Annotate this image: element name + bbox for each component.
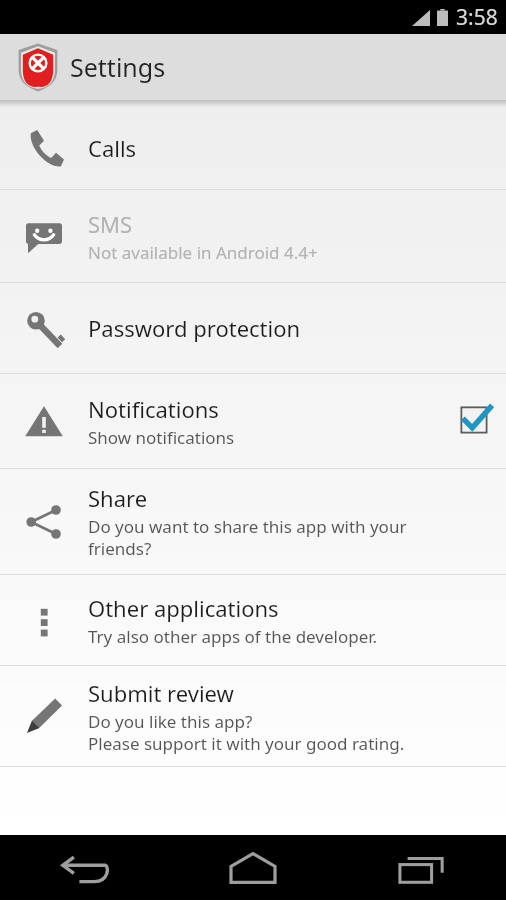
button[interactable]: Recents: [337, 835, 506, 900]
staticText: SMS: [88, 209, 133, 239]
button[interactable]: Calls: [0, 107, 506, 189]
button[interactable]: Share: [0, 469, 506, 574]
staticText: Share: [88, 483, 148, 513]
button[interactable]: Back: [0, 835, 168, 900]
staticText: Settings: [70, 50, 166, 84]
staticText: Calls: [88, 133, 137, 163]
button[interactable]: Home: [168, 835, 337, 900]
staticText: Do you like this app? Please support it …: [88, 710, 405, 755]
staticText: Not available in Android 4.4+: [88, 241, 318, 264]
button[interactable]: Notifications: [0, 374, 506, 468]
staticText: Password protection: [88, 313, 301, 343]
button[interactable]: Settings: [0, 34, 506, 100]
staticText: 3:58: [456, 3, 498, 32]
staticText: Submit review: [88, 678, 234, 708]
button[interactable]: SMS: [0, 190, 506, 282]
button[interactable]: Password protection: [0, 283, 506, 373]
button[interactable]: Other applications: [0, 575, 506, 665]
button[interactable]: Submit review: [0, 666, 506, 766]
staticText: Do you want to share this app with your …: [88, 515, 407, 560]
staticText: Notifications: [88, 394, 219, 424]
staticText: Show notifications: [88, 426, 235, 449]
staticText: Other applications: [88, 593, 279, 623]
staticText: Try also other apps of the developer.: [88, 625, 378, 648]
